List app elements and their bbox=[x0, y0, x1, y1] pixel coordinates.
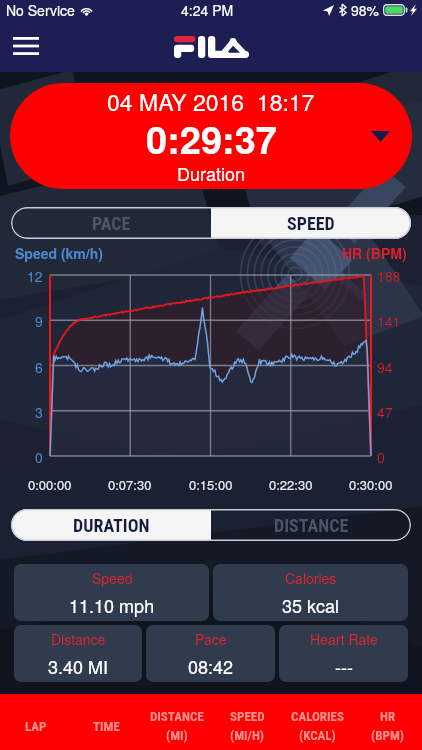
staticText: 0:07:30 bbox=[108, 475, 152, 494]
staticText: HR (BPM) bbox=[342, 243, 407, 263]
staticText: PACE bbox=[92, 213, 131, 234]
staticText: 0:15:00 bbox=[189, 475, 233, 494]
staticText: 0:29:37 bbox=[146, 111, 277, 165]
button[interactable]: 04 MAY 2016 18:17 bbox=[10, 83, 412, 189]
staticText: (KCAL) bbox=[299, 728, 336, 743]
staticText: DURATION bbox=[73, 515, 150, 536]
staticText: 0 bbox=[35, 447, 43, 467]
staticText: DISTANCE bbox=[150, 709, 204, 724]
staticText: LAP bbox=[25, 719, 47, 734]
staticText: Pace bbox=[195, 629, 227, 649]
staticText: CALORIES bbox=[291, 709, 344, 724]
staticText: Speed (km/h) bbox=[15, 243, 103, 263]
button[interactable]: SPEED bbox=[211, 207, 411, 239]
staticText: 188 bbox=[377, 266, 401, 286]
staticText: (MI/H) bbox=[230, 728, 265, 743]
staticText: 0:00:00 bbox=[28, 475, 72, 494]
staticText: SPEED bbox=[230, 709, 265, 724]
button[interactable]: DISTANCE bbox=[211, 509, 411, 541]
staticText: 9 bbox=[35, 311, 43, 331]
staticText: 35 kcal bbox=[282, 592, 340, 618]
staticText: Calories bbox=[285, 568, 337, 588]
button[interactable]: Menu bbox=[4, 24, 48, 68]
staticText: Duration bbox=[177, 160, 245, 186]
staticText: (MI) bbox=[166, 728, 188, 743]
button[interactable]: Heart Rate bbox=[279, 625, 408, 682]
button[interactable]: LAP bbox=[0, 694, 71, 750]
staticText: 04 MAY 2016 18:17 bbox=[107, 85, 315, 118]
staticText: 12 bbox=[27, 266, 43, 286]
button[interactable]: PACE bbox=[11, 207, 211, 239]
staticText: 3.40 MI bbox=[48, 653, 109, 679]
button[interactable]: Speed bbox=[14, 564, 209, 621]
staticText: Distance bbox=[51, 629, 106, 649]
staticText: 08:42 bbox=[188, 653, 234, 679]
staticText: Heart Rate bbox=[310, 629, 378, 649]
staticText: 0:30:00 bbox=[349, 475, 393, 494]
staticText: DISTANCE bbox=[274, 515, 349, 536]
staticText: TIME bbox=[93, 719, 120, 734]
staticText: 141 bbox=[377, 311, 401, 331]
staticText: 11.10 mph bbox=[69, 592, 155, 618]
button[interactable]: CALORIES bbox=[282, 694, 352, 750]
staticText: 3 bbox=[35, 402, 43, 422]
staticText: --- bbox=[335, 653, 353, 679]
button[interactable]: DURATION bbox=[11, 509, 211, 541]
staticText: 94 bbox=[377, 357, 393, 377]
staticText: Speed bbox=[92, 568, 133, 588]
button[interactable]: Pace bbox=[146, 625, 275, 682]
staticText: No Service bbox=[6, 0, 75, 20]
staticText: 47 bbox=[377, 402, 393, 422]
button[interactable]: TIME bbox=[71, 694, 142, 750]
staticText: 4:24 PM bbox=[181, 0, 234, 20]
button[interactable]: HR bbox=[352, 694, 422, 750]
staticText: 0:22:30 bbox=[269, 475, 313, 494]
staticText: 98% bbox=[351, 0, 380, 20]
button[interactable]: SPEED bbox=[212, 694, 282, 750]
staticText: HR bbox=[380, 709, 396, 724]
button[interactable]: Calories bbox=[213, 564, 408, 621]
staticText: (BPM) bbox=[371, 728, 404, 743]
staticText: 0 bbox=[377, 447, 385, 467]
button[interactable]: DISTANCE bbox=[142, 694, 212, 750]
button[interactable]: Distance bbox=[14, 625, 142, 682]
staticText: 6 bbox=[35, 357, 43, 377]
staticText: SPEED bbox=[287, 213, 335, 234]
